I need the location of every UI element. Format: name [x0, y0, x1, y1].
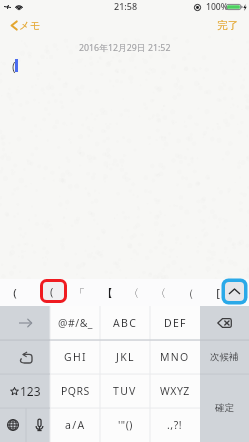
staticText: 100% — [206, 1, 229, 13]
staticText: DEF — [164, 316, 187, 330]
staticText: PQRS — [61, 384, 90, 398]
staticText: 〈 — [155, 286, 166, 300]
staticText: 2016年12月29日 21:52 — [79, 42, 171, 54]
staticText: JKL — [116, 350, 135, 364]
staticText: （ — [183, 286, 194, 300]
button[interactable]: WXYZ — [150, 374, 200, 408]
button[interactable]: 「 — [67, 279, 91, 306]
button[interactable]: [ — [206, 279, 230, 306]
button[interactable]: .,?! — [150, 408, 200, 442]
staticText: ABC — [113, 316, 138, 330]
staticText: ( — [13, 285, 17, 300]
staticText: 21:58 — [114, 0, 138, 12]
button[interactable]: 【 — [95, 279, 119, 306]
staticText: a/A — [65, 418, 86, 432]
button[interactable]: （ — [176, 279, 200, 306]
button[interactable]: Undo — [0, 340, 50, 374]
staticText: TUV — [113, 384, 137, 398]
button[interactable]: メモ — [0, 15, 49, 36]
button[interactable]: 完了 — [207, 15, 249, 36]
staticText: @#/&_ — [58, 316, 93, 330]
staticText: MNO — [160, 350, 190, 364]
button[interactable]: MNO — [150, 340, 200, 374]
button[interactable]: Move cursor right — [0, 306, 50, 340]
button[interactable]: DEF — [150, 306, 200, 340]
button[interactable]: JKL — [100, 340, 150, 374]
staticText: ( — [50, 284, 54, 299]
button[interactable]: Switch keyboard — [0, 408, 26, 442]
button[interactable]: '"() — [100, 408, 150, 442]
button[interactable]: @#/&_ — [50, 306, 100, 340]
button[interactable]: ( — [40, 279, 67, 303]
button[interactable]: Dictation — [26, 408, 50, 442]
staticText: '"() — [118, 418, 133, 432]
button[interactable]: ABC — [100, 306, 150, 340]
button[interactable]: Delete — [200, 306, 249, 340]
staticText: 【 — [102, 286, 113, 300]
button[interactable]: a/A — [50, 408, 100, 442]
button[interactable]: ( — [3, 279, 27, 306]
button[interactable]: PQRS — [50, 374, 100, 408]
button[interactable]: 123 — [0, 374, 50, 408]
staticText: ( — [12, 58, 16, 74]
button[interactable]: 〈 — [121, 279, 145, 306]
staticText: 次候補 — [210, 351, 239, 363]
button[interactable]: TUV — [100, 374, 150, 408]
button[interactable]: 確定 — [200, 374, 249, 442]
staticText: 「 — [74, 286, 85, 300]
staticText: メモ — [19, 19, 41, 32]
staticText: [ — [216, 285, 220, 300]
button[interactable]: 〈 — [148, 279, 172, 306]
staticText: WXYZ — [160, 384, 190, 398]
staticText: .,?! — [167, 418, 183, 432]
button[interactable]: 次候補 — [200, 340, 249, 374]
button[interactable]: Hide keyboard — [221, 278, 248, 305]
staticText: GHI — [64, 350, 87, 364]
staticText: 確定 — [215, 402, 234, 414]
staticText: 〈 — [128, 286, 139, 300]
button[interactable]: GHI — [50, 340, 100, 374]
staticText: 123 — [20, 383, 41, 399]
